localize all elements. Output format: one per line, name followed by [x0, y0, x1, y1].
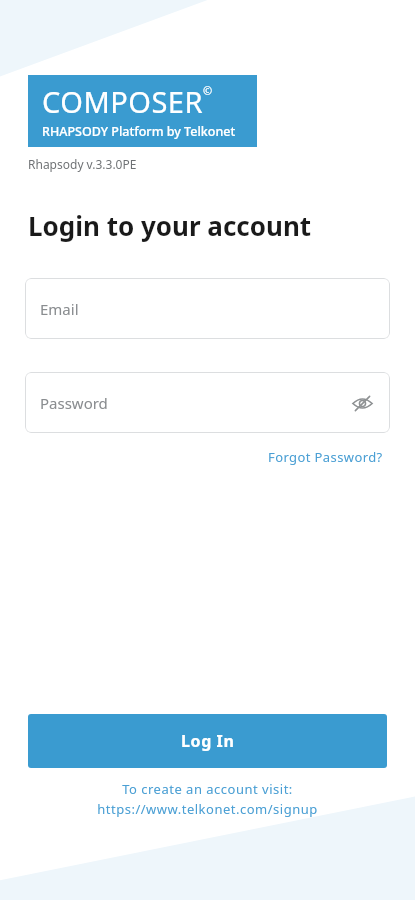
staticText: RHAPSODY Platform by Telkonet [42, 123, 236, 140]
staticText: Log In [181, 730, 235, 752]
button[interactable]: Forgot Password? [264, 445, 387, 469]
button[interactable]: Password [25, 372, 390, 433]
staticText: Password [40, 393, 108, 413]
button[interactable]: Log In [28, 714, 387, 768]
staticText: Login to your account [28, 208, 312, 243]
staticText: Rhapsody v.3.3.0PE [28, 156, 137, 172]
staticText: https://www.telkonet.com/signup [97, 800, 318, 818]
staticText: Forgot Password? [268, 448, 383, 466]
staticText: To create an account visit: [122, 780, 293, 798]
button[interactable]: Email [25, 278, 390, 339]
button[interactable]: Show password [348, 389, 376, 417]
staticText: COMPOSER [42, 82, 203, 121]
staticText: Email [40, 299, 79, 319]
button[interactable]: To create an account visit: [0, 778, 415, 820]
staticText: © [203, 83, 213, 98]
